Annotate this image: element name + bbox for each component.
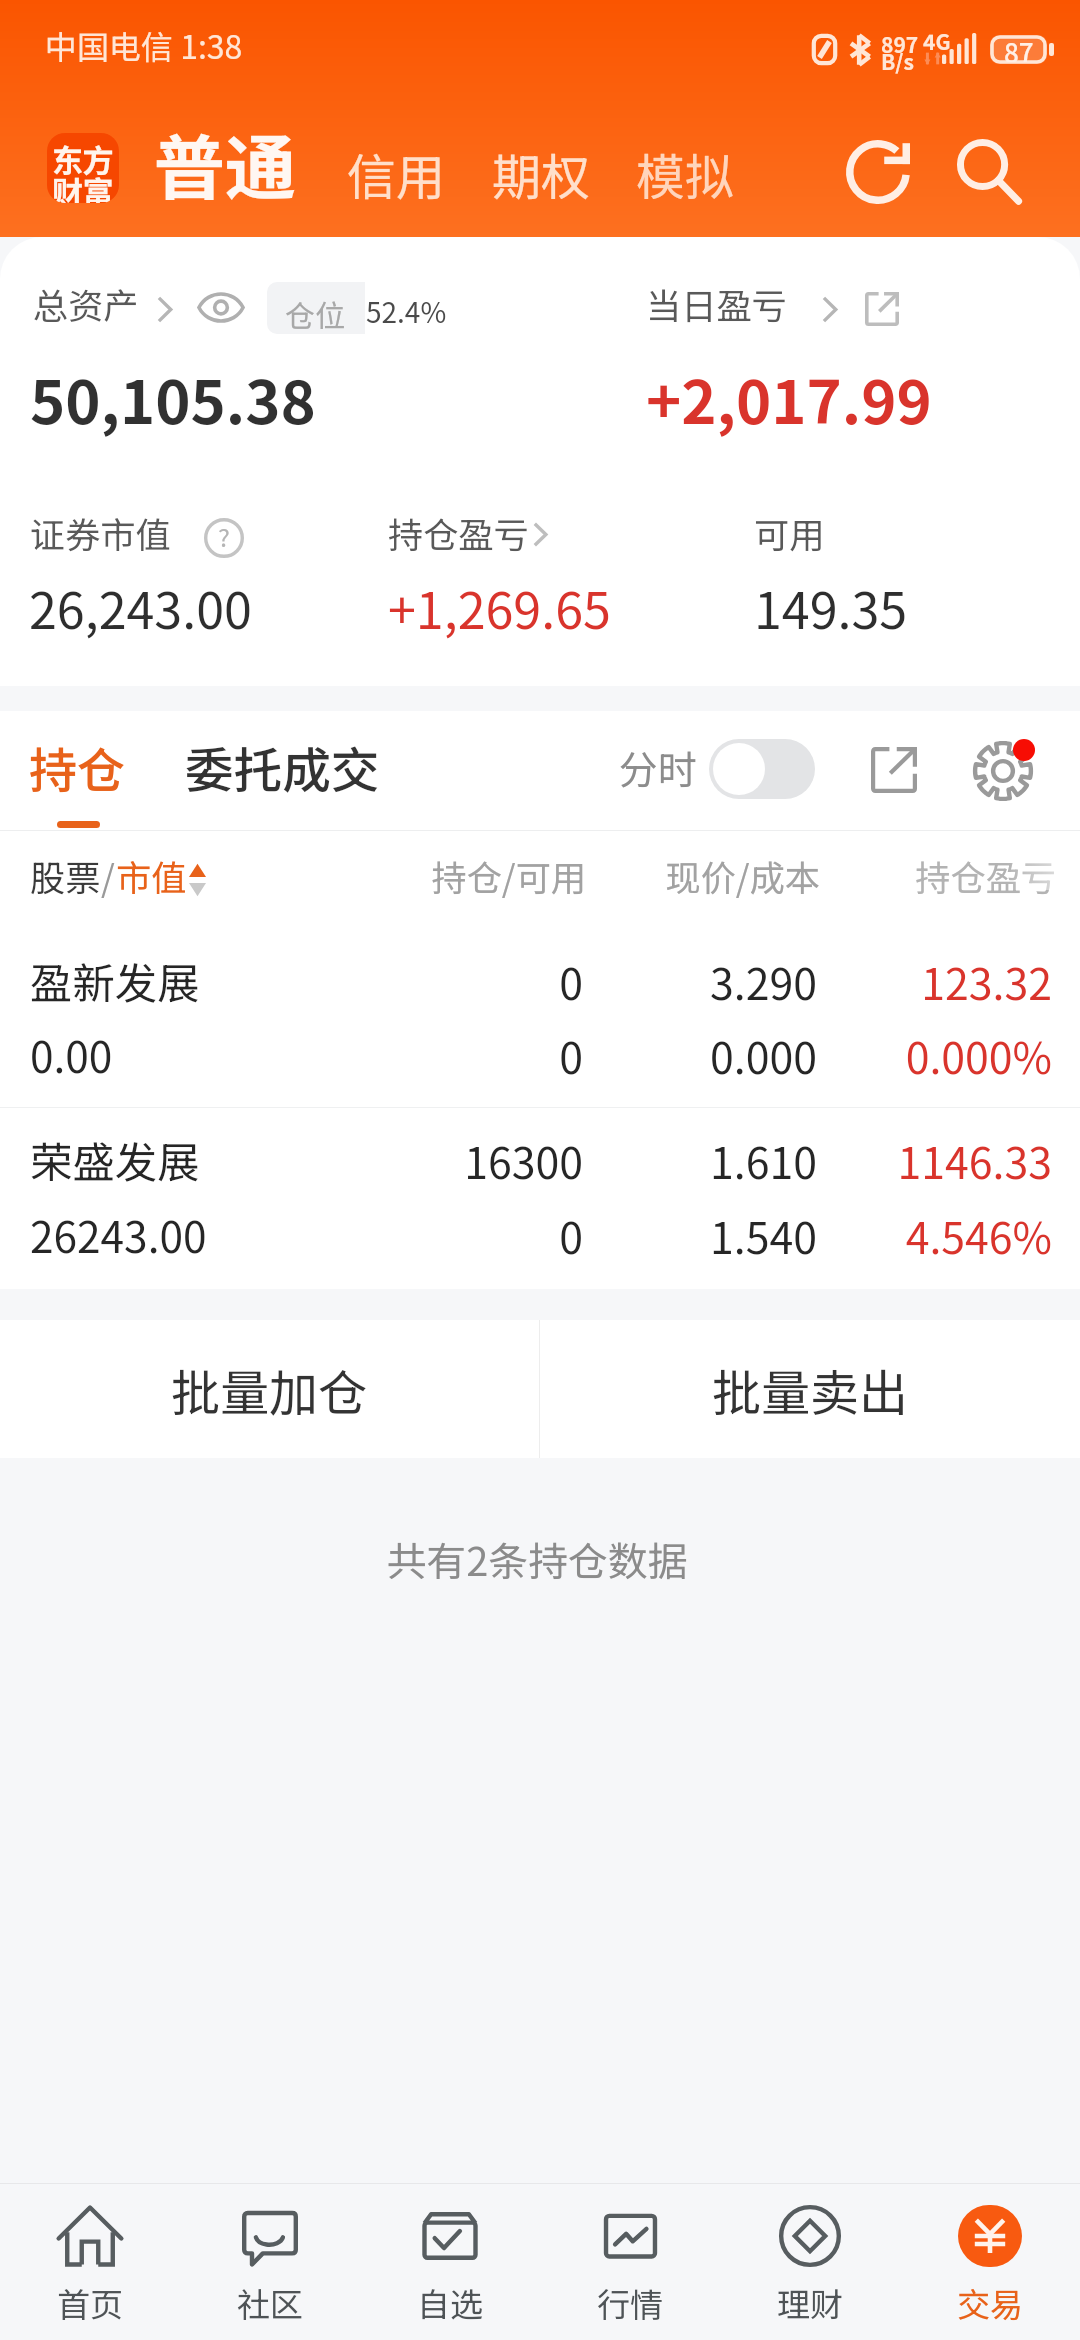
staticText: 0.00 xyxy=(30,1024,113,1085)
button[interactable]: 批量卖出 xyxy=(540,1320,1080,1458)
staticText: 期权 xyxy=(492,138,591,209)
staticText: B/s xyxy=(881,46,914,76)
staticText: 盈新发展 xyxy=(30,950,200,1011)
staticText: 1.610 xyxy=(417,1129,817,1191)
button[interactable]: 社区 xyxy=(180,2184,360,2340)
staticText: 批量卖出 xyxy=(712,1354,909,1425)
button[interactable]: 普通 xyxy=(154,112,297,215)
staticText: 0 xyxy=(183,950,583,1012)
staticText: 0 xyxy=(183,1024,583,1086)
staticText: 0 xyxy=(183,1204,583,1266)
button[interactable]: 仓位 xyxy=(267,282,456,334)
button[interactable]: 持仓盈亏 xyxy=(388,507,529,558)
button[interactable]: 行情 xyxy=(540,2184,720,2340)
staticText: 4.546% xyxy=(652,1204,1052,1266)
button[interactable]: Settings xyxy=(967,735,1039,807)
staticText: 仓位 xyxy=(285,292,345,335)
button[interactable]: Expand table xyxy=(858,734,930,806)
staticText: 模拟 xyxy=(636,138,735,209)
staticText: 0.000% xyxy=(652,1024,1052,1086)
staticText: 信用 xyxy=(347,138,446,209)
staticText: 149.35 xyxy=(754,571,908,644)
button[interactable]: Search xyxy=(943,127,1033,217)
button[interactable]: 理财 xyxy=(720,2184,900,2340)
staticText: 4G xyxy=(923,26,951,56)
button[interactable]: 持仓 xyxy=(10,711,145,830)
staticText: 股票 xyxy=(30,850,101,901)
staticText: 自选 xyxy=(417,2279,484,2327)
staticText: +1,269.65 xyxy=(388,571,611,644)
button[interactable]: 当日盈亏 xyxy=(646,278,787,329)
staticText: 荣盛发展 xyxy=(30,1129,200,1190)
staticText: 0.000 xyxy=(417,1024,817,1086)
staticText: 理财 xyxy=(777,2279,844,2327)
staticText: 26243.00 xyxy=(30,1204,207,1265)
staticText: 普通 xyxy=(154,112,297,215)
staticText: 1146.33 xyxy=(652,1129,1052,1191)
staticText: 市值 xyxy=(116,850,187,901)
button[interactable] xyxy=(0,1108,1080,1290)
button[interactable] xyxy=(0,898,1080,1080)
staticText: 897 xyxy=(881,29,919,59)
staticText: 证券市值 xyxy=(30,507,171,558)
staticText: 可用 xyxy=(754,507,825,558)
staticText: 1.540 xyxy=(417,1204,817,1266)
staticText: 总资产 xyxy=(33,278,139,329)
button[interactable]: 东方 xyxy=(47,133,119,203)
button[interactable]: 期权 xyxy=(492,138,591,209)
button[interactable]: 总资产 xyxy=(33,278,139,329)
staticText: 3.290 xyxy=(417,950,817,1012)
button[interactable]: Refresh xyxy=(833,127,923,217)
button[interactable]: 委托成交 xyxy=(167,711,397,830)
staticText: 当日盈亏 xyxy=(646,278,787,329)
staticText: 委托成交 xyxy=(185,732,380,802)
staticText: 批量加仓 xyxy=(171,1354,368,1425)
staticText: ? xyxy=(218,518,230,554)
button[interactable]: 分时 xyxy=(608,726,823,811)
staticText: 持仓盈亏 xyxy=(388,507,529,558)
staticText: 52.4% xyxy=(366,291,447,332)
staticText: 持仓盈亏 xyxy=(756,850,1056,901)
button[interactable]: 信用 xyxy=(347,138,446,209)
staticText: 持仓 xyxy=(29,732,126,802)
staticText: 共有2条持仓数据 xyxy=(0,1530,1077,1588)
staticText: / xyxy=(101,850,115,901)
staticText: +2,017.99 xyxy=(646,355,932,442)
button[interactable]: Toggle asset visibility xyxy=(197,288,245,326)
staticText: 16300 xyxy=(183,1129,583,1191)
staticText: 中国电信 1:38 xyxy=(45,22,243,68)
staticText: 社区 xyxy=(237,2279,304,2327)
staticText: 26,243.00 xyxy=(29,571,252,644)
button[interactable]: What is securities value xyxy=(204,518,244,558)
button[interactable]: 批量加仓 xyxy=(0,1320,539,1458)
staticText: 交易 xyxy=(957,2279,1024,2327)
staticText: 东方 xyxy=(52,136,113,181)
button[interactable]: 模拟 xyxy=(636,138,735,209)
button[interactable]: 首页 xyxy=(0,2184,180,2340)
staticText: 财富 xyxy=(52,168,113,203)
button[interactable]: Open daily profit detail xyxy=(859,286,905,332)
staticText: 87 xyxy=(1004,33,1034,62)
staticText: 持仓/可用 xyxy=(286,850,586,901)
staticText: 分时 xyxy=(619,739,697,795)
staticText: 首页 xyxy=(57,2279,124,2327)
button[interactable]: 自选 xyxy=(360,2184,540,2340)
staticText: 现价/成本 xyxy=(520,850,820,901)
staticText: 行情 xyxy=(597,2279,664,2327)
staticText: 123.32 xyxy=(652,950,1052,1012)
button[interactable]: 交易 xyxy=(900,2184,1080,2340)
staticText: 50,105.38 xyxy=(30,355,316,442)
